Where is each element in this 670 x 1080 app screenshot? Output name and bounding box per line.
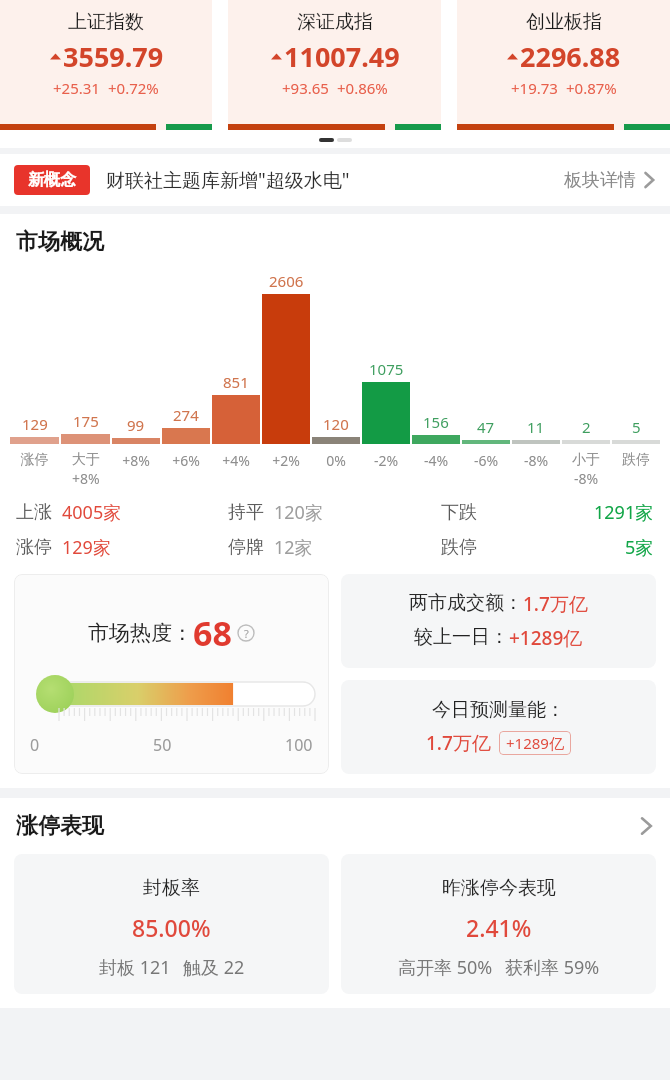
staticText: 大于 bbox=[72, 451, 100, 469]
staticText: +2% bbox=[262, 451, 310, 470]
button[interactable]: 今日预测量能： bbox=[341, 680, 656, 774]
staticText: -2% bbox=[362, 451, 410, 470]
staticText: 1075 bbox=[369, 359, 404, 379]
staticText: +0.86% bbox=[337, 78, 388, 98]
staticText: 5家 bbox=[625, 535, 654, 560]
staticText: +6% bbox=[162, 451, 210, 470]
staticText: +19.73 bbox=[511, 78, 558, 98]
staticText: 0 bbox=[30, 734, 40, 756]
staticText: 板块详情 bbox=[564, 169, 636, 192]
staticText: +0.87% bbox=[566, 78, 617, 98]
staticText: 触及 22 bbox=[183, 955, 245, 980]
staticText: +8% bbox=[72, 469, 100, 488]
staticText: +8% bbox=[112, 451, 160, 470]
staticText: 120 bbox=[323, 414, 349, 434]
staticText: 2296.88 bbox=[520, 38, 621, 75]
button[interactable]: 120 bbox=[312, 270, 360, 470]
staticText: 5 bbox=[632, 417, 641, 437]
staticText: 高开率 50% bbox=[398, 955, 493, 980]
staticText: 11007.49 bbox=[284, 38, 400, 75]
staticText: 156 bbox=[423, 412, 449, 432]
staticText: 50 bbox=[153, 734, 172, 756]
staticText: 1291家 bbox=[594, 500, 654, 525]
staticText: 上涨 bbox=[16, 501, 52, 524]
staticText: 较上一日： bbox=[414, 625, 509, 649]
staticText: +25.31 bbox=[53, 78, 100, 98]
staticText: ? bbox=[244, 626, 249, 641]
button[interactable]: 2606 bbox=[262, 270, 310, 470]
button[interactable]: 5 bbox=[612, 270, 660, 469]
staticText: 11 bbox=[527, 417, 545, 437]
staticText: 涨停 bbox=[16, 536, 52, 559]
staticText: -4% bbox=[412, 451, 460, 470]
button[interactable]: 47 bbox=[462, 270, 510, 470]
staticText: 昨涨停今表现 bbox=[442, 876, 556, 900]
staticText: 封板率 bbox=[143, 876, 200, 900]
staticText: +4% bbox=[212, 451, 260, 470]
staticText: +1289亿 bbox=[506, 733, 564, 753]
staticText: 持平 bbox=[228, 501, 264, 524]
button[interactable]: 851 bbox=[212, 270, 260, 470]
staticText: 129 bbox=[22, 414, 48, 434]
button[interactable]: 11 bbox=[512, 270, 560, 470]
staticText: 上证指数 bbox=[68, 10, 144, 34]
staticText: 涨停 bbox=[10, 451, 59, 469]
button[interactable]: 新概念 bbox=[14, 154, 656, 206]
staticText: +0.72% bbox=[108, 78, 159, 98]
staticText: -6% bbox=[462, 451, 510, 470]
button[interactable]: 1075 bbox=[362, 270, 410, 470]
staticText: -8% bbox=[574, 469, 599, 488]
button[interactable]: 说明 bbox=[237, 624, 255, 642]
button[interactable]: 市场热度： bbox=[14, 574, 329, 774]
staticText: 274 bbox=[173, 405, 199, 425]
staticText: 市场概况 bbox=[16, 228, 104, 256]
staticText: 2.41% bbox=[466, 912, 532, 943]
staticText: 小于 bbox=[572, 451, 600, 469]
staticText: 99 bbox=[127, 415, 145, 435]
staticText: 2606 bbox=[269, 271, 304, 291]
staticText: 12家 bbox=[274, 535, 313, 560]
button[interactable]: 129 bbox=[10, 270, 59, 469]
staticText: 4005家 bbox=[62, 500, 122, 525]
staticText: 129家 bbox=[62, 535, 111, 560]
staticText: 下跌 bbox=[441, 501, 477, 524]
button[interactable]: 上证指数 bbox=[0, 0, 212, 130]
button[interactable]: 深证成指 bbox=[228, 0, 441, 130]
staticText: 47 bbox=[477, 417, 495, 437]
button[interactable]: 156 bbox=[412, 270, 460, 470]
staticText: 跌停 bbox=[441, 536, 477, 559]
staticText: 新概念 bbox=[28, 170, 76, 190]
staticText: 175 bbox=[73, 411, 99, 431]
staticText: -8% bbox=[512, 451, 560, 470]
staticText: 两市成交额： bbox=[409, 591, 523, 615]
staticText: 创业板指 bbox=[526, 10, 602, 34]
staticText: 获利率 59% bbox=[505, 955, 600, 980]
staticText: 3559.79 bbox=[63, 38, 164, 75]
staticText: 今日预测量能： bbox=[432, 698, 565, 722]
button[interactable]: 2 bbox=[562, 270, 610, 488]
button[interactable]: 175 bbox=[61, 270, 110, 488]
staticText: 财联社主题库新增"超级水电" bbox=[106, 167, 350, 193]
staticText: 1.7万亿 bbox=[523, 591, 588, 617]
staticText: 85.00% bbox=[132, 912, 211, 943]
staticText: 1.7万亿 bbox=[426, 730, 491, 756]
staticText: 市场热度： bbox=[88, 620, 193, 646]
staticText: +1289亿 bbox=[509, 625, 583, 651]
staticText: 2 bbox=[582, 417, 591, 437]
staticText: 封板 121 bbox=[99, 955, 171, 980]
button[interactable]: 274 bbox=[162, 270, 210, 470]
button[interactable]: 99 bbox=[112, 270, 160, 470]
button[interactable]: 昨涨停今表现 bbox=[341, 854, 656, 994]
staticText: 100 bbox=[285, 734, 313, 756]
staticText: 涨停表现 bbox=[16, 812, 104, 840]
button[interactable]: 创业板指 bbox=[457, 0, 670, 130]
button[interactable]: 两市成交额： bbox=[341, 574, 656, 668]
staticText: 跌停 bbox=[612, 451, 660, 469]
staticText: +93.65 bbox=[282, 78, 329, 98]
staticText: 120家 bbox=[274, 500, 323, 525]
staticText: 停牌 bbox=[228, 536, 264, 559]
staticText: 851 bbox=[223, 372, 249, 392]
staticText: 68 bbox=[193, 610, 232, 656]
button[interactable]: 封板率 bbox=[14, 854, 329, 994]
button[interactable]: 涨停表现 bbox=[16, 798, 654, 854]
